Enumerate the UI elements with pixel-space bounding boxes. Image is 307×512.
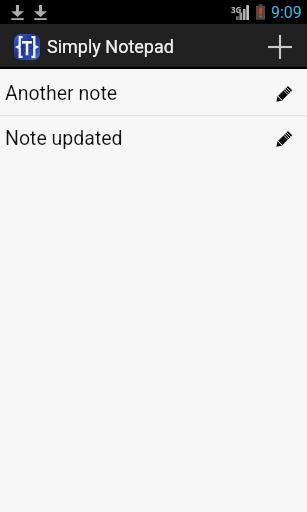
button[interactable]: Edit [270, 78, 300, 108]
button[interactable]: Another note [0, 71, 307, 115]
staticText: 9:09 [271, 3, 302, 22]
button[interactable]: Add note [253, 24, 307, 69]
staticText: 3G [231, 4, 242, 15]
staticText: Another note [5, 82, 270, 105]
button[interactable]: Edit [270, 123, 300, 153]
staticText: Simply Notepad [47, 36, 174, 57]
button[interactable]: Note updated [0, 116, 307, 160]
staticText: Note updated [5, 127, 270, 150]
